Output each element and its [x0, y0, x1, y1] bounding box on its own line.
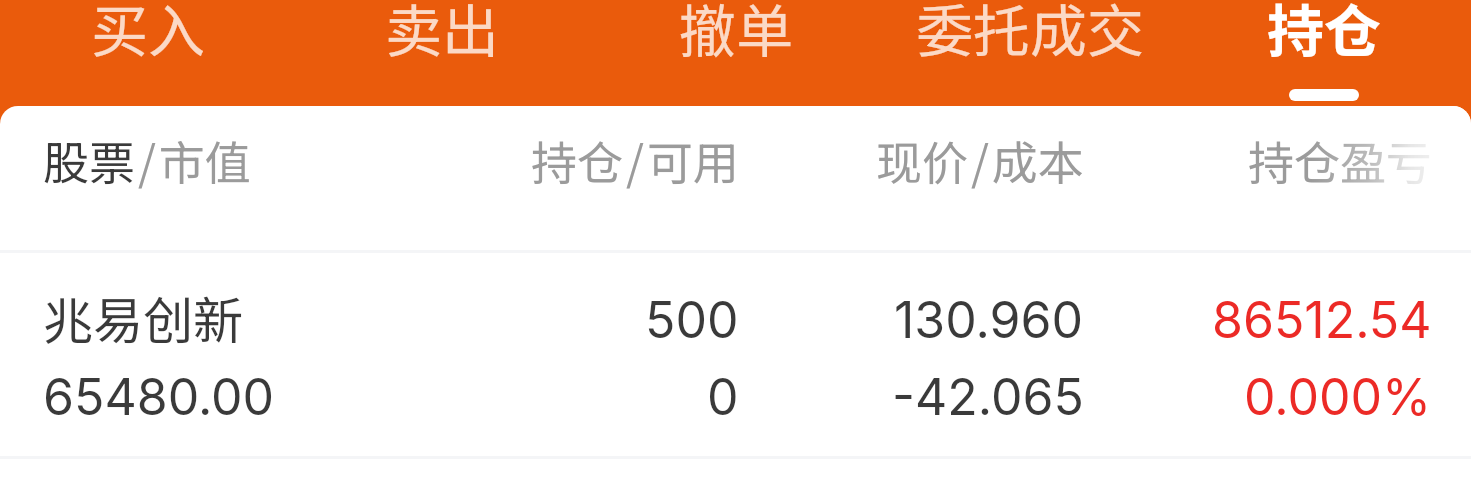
staticText: 股票 / 市值: [43, 127, 251, 194]
button[interactable]: 持仓: [1177, 0, 1471, 106]
button[interactable]: 持仓 / 可用: [368, 106, 739, 214]
button[interactable]: 卖出: [295, 0, 589, 106]
staticText: -42.065: [892, 367, 1084, 427]
staticText: 兆易创新: [43, 281, 243, 353]
staticText: 卖出: [385, 0, 499, 69]
button[interactable]: 现价 / 成本: [739, 106, 1084, 214]
staticText: 买入: [91, 0, 205, 69]
staticText: 委托成交: [916, 0, 1144, 69]
staticText: 86512.54: [1212, 290, 1432, 350]
staticText: 现价 / 成本: [876, 127, 1084, 194]
staticText: 持仓 / 可用: [531, 127, 739, 194]
button[interactable]: 持仓盈亏: [1084, 106, 1471, 214]
button[interactable]: 委托成交: [883, 0, 1177, 106]
button[interactable]: 股票 / 市值: [0, 106, 368, 214]
staticText: 撤单: [679, 0, 793, 69]
button[interactable]: 撤单: [589, 0, 883, 106]
button[interactable]: 兆易创新: [0, 253, 1471, 456]
button[interactable]: 买入: [0, 0, 295, 106]
staticText: 0: [707, 367, 739, 427]
staticText: 130.960: [894, 290, 1084, 350]
staticText: 0.000%: [1244, 367, 1432, 427]
staticText: 65480.00: [43, 367, 275, 427]
staticText: 500: [645, 290, 739, 350]
staticText: 持仓盈亏: [1248, 127, 1432, 194]
other: Selected tab indicator: [1289, 89, 1359, 101]
staticText: 持仓: [1267, 0, 1381, 69]
